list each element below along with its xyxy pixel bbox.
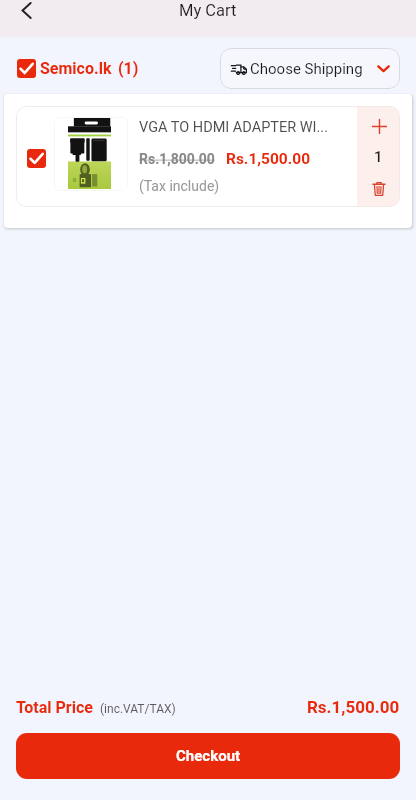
staticText: (Tax include) (139, 178, 220, 194)
staticText: Choose Shipping (250, 60, 363, 78)
button[interactable]: Semico.lk (17, 59, 139, 78)
staticText: Checkout (176, 747, 241, 765)
staticText: Total Price (16, 698, 93, 717)
staticText: Rs.1,500.00 (307, 697, 400, 717)
button[interactable]: Select item (27, 149, 46, 168)
button[interactable]: Choose Shipping (220, 48, 400, 89)
staticText: 1 (374, 148, 383, 166)
staticText: (inc.VAT/TAX) (100, 702, 176, 716)
staticText: Rs.1,500.00 (226, 150, 311, 168)
staticText: My Cart (179, 1, 237, 20)
staticText: Rs.1,800.00 (139, 151, 215, 167)
staticText: VGA TO HDMI ADAPTER WI... (139, 119, 329, 136)
button[interactable]: Checkout (16, 733, 400, 779)
staticText: Semico.lk (40, 59, 112, 78)
button[interactable]: Back (13, 0, 39, 23)
button[interactable]: Increase quantity (365, 112, 393, 140)
button[interactable]: Delete item (365, 174, 393, 202)
staticText: (1) (118, 59, 139, 78)
